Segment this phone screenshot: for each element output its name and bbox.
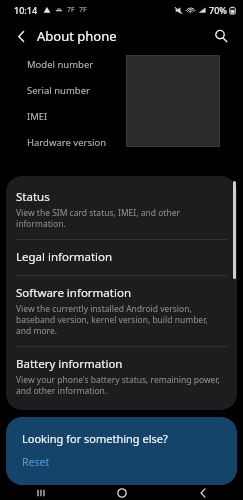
staticText: 10:14 bbox=[14, 4, 38, 16]
staticText: Looking for something else? bbox=[22, 431, 168, 446]
staticText: IMEI bbox=[27, 110, 48, 123]
button[interactable]: Status bbox=[6, 180, 237, 239]
staticText: View the currently installed Android ver… bbox=[16, 303, 223, 336]
staticText: About phone bbox=[37, 27, 117, 45]
staticText: Battery information bbox=[16, 356, 123, 372]
button[interactable]: Back bbox=[10, 25, 32, 47]
button[interactable]: Battery information bbox=[6, 347, 237, 406]
staticText: 7F bbox=[79, 5, 87, 15]
staticText: View your phone's battery status, remain… bbox=[16, 374, 223, 396]
staticText: Software information bbox=[16, 285, 131, 301]
button[interactable]: Search bbox=[209, 24, 233, 48]
staticText: Reset bbox=[22, 455, 50, 469]
staticText: View the SIM card status, IMEI, and othe… bbox=[16, 207, 223, 229]
staticText: Status bbox=[16, 189, 50, 205]
button[interactable]: Software information bbox=[6, 276, 237, 346]
staticText: Serial number bbox=[27, 84, 90, 97]
button[interactable]: Recent apps bbox=[24, 485, 58, 500]
button[interactable]: Legal information bbox=[6, 240, 237, 275]
staticText: Model number bbox=[27, 58, 94, 71]
button[interactable]: Home bbox=[105, 485, 139, 500]
staticText: 70% bbox=[209, 4, 227, 16]
staticText: Hardware version bbox=[27, 136, 107, 149]
staticText: 7F bbox=[67, 5, 75, 15]
button[interactable]: Back bbox=[186, 485, 220, 500]
staticText: Legal information bbox=[16, 249, 113, 265]
button[interactable]: Reset bbox=[22, 455, 50, 469]
